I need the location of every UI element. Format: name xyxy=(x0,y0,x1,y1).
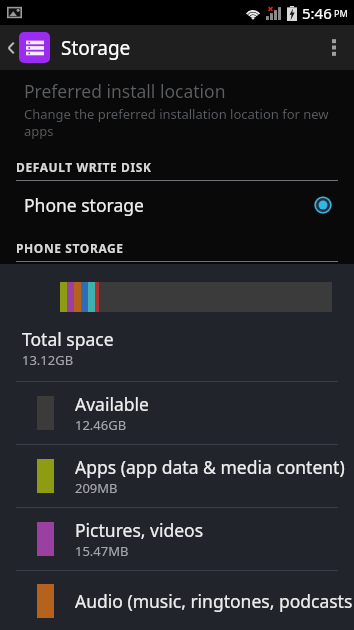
staticText: 13.12GB xyxy=(22,351,74,369)
button[interactable]: Available xyxy=(0,382,354,444)
button[interactable]: Total space xyxy=(0,327,354,369)
staticText: Storage xyxy=(61,35,131,61)
staticText: Phone storage xyxy=(24,193,144,217)
staticText: 15.47MB xyxy=(75,542,129,560)
button[interactable]: More options xyxy=(314,25,354,70)
button[interactable]: Preferred install location xyxy=(0,70,354,148)
staticText: 209MB xyxy=(75,479,118,497)
button[interactable]: Phone storage xyxy=(0,181,354,229)
button[interactable]: Navigate up xyxy=(0,28,52,67)
button[interactable]: Apps (app data & media content) xyxy=(0,445,354,507)
staticText: Preferred install location xyxy=(24,79,226,103)
staticText: Available xyxy=(75,392,149,416)
staticText: Apps (app data & media content) xyxy=(75,455,345,479)
staticText: DEFAULT WRITE DISK xyxy=(16,159,152,175)
staticText: 5:46 xyxy=(302,3,332,23)
staticText: PM xyxy=(334,7,348,19)
staticText: Change the preferred installation locati… xyxy=(24,105,334,140)
staticText: Audio (music, ringtones, podcasts etc.) xyxy=(75,589,354,613)
staticText: 12.46GB xyxy=(75,416,127,434)
button[interactable]: Pictures, videos xyxy=(0,508,354,570)
staticText: Pictures, videos xyxy=(75,518,204,542)
button[interactable]: Audio (music, ringtones, podcasts etc.) xyxy=(0,571,354,630)
staticText: Total space xyxy=(22,327,114,351)
staticText: PHONE STORAGE xyxy=(16,240,124,256)
